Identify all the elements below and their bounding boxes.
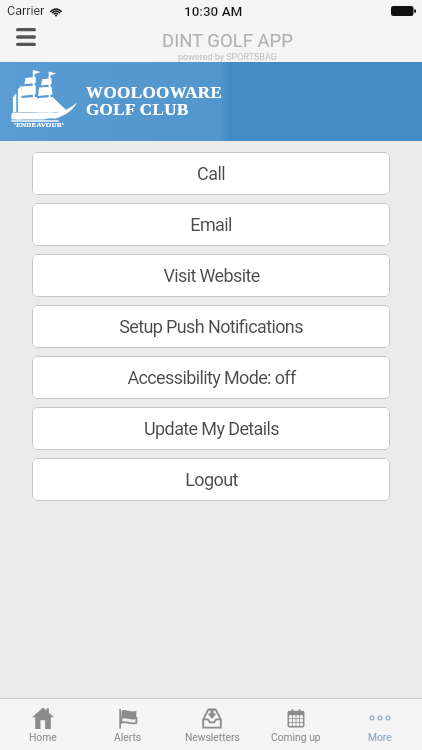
staticText: WOOLOOWARE GOLF CLUB bbox=[86, 83, 223, 119]
button[interactable]: Menu bbox=[4, 18, 48, 55]
staticText: Coming up bbox=[271, 731, 321, 743]
staticText: Visit Website bbox=[163, 265, 260, 286]
staticText: Newsletters bbox=[185, 731, 240, 743]
button[interactable]: Coming up bbox=[254, 699, 338, 750]
button[interactable]: Email bbox=[32, 203, 390, 246]
staticText: DINT GOLF APP bbox=[162, 30, 293, 52]
staticText: Logout bbox=[185, 469, 238, 490]
button[interactable]: Visit Website bbox=[32, 254, 390, 297]
staticText: Accessibility Mode: off bbox=[127, 367, 296, 388]
staticText: 'ENDEAVOUR' bbox=[14, 121, 65, 129]
staticText: Setup Push Notifications bbox=[119, 316, 303, 337]
staticText: Carrier bbox=[7, 3, 45, 18]
button[interactable]: Accessibility Mode: off bbox=[32, 356, 390, 399]
button[interactable]: Newsletters bbox=[170, 699, 254, 750]
button[interactable]: Home bbox=[0, 699, 85, 750]
staticText: Update My Details bbox=[144, 418, 279, 439]
button[interactable]: Setup Push Notifications bbox=[32, 305, 390, 348]
staticText: powered by SPORTSBAG bbox=[178, 52, 277, 63]
staticText: 10:30 AM bbox=[184, 3, 243, 19]
button[interactable]: Update My Details bbox=[32, 407, 390, 450]
staticText: Alerts bbox=[114, 731, 142, 743]
button[interactable]: Logout bbox=[32, 458, 390, 501]
staticText: Home bbox=[29, 731, 57, 743]
button[interactable]: More bbox=[338, 699, 422, 750]
staticText: More bbox=[368, 731, 392, 743]
staticText: Call bbox=[197, 163, 225, 184]
staticText: Email bbox=[190, 214, 232, 235]
button[interactable]: Call bbox=[32, 152, 390, 195]
button[interactable]: Alerts bbox=[85, 699, 170, 750]
